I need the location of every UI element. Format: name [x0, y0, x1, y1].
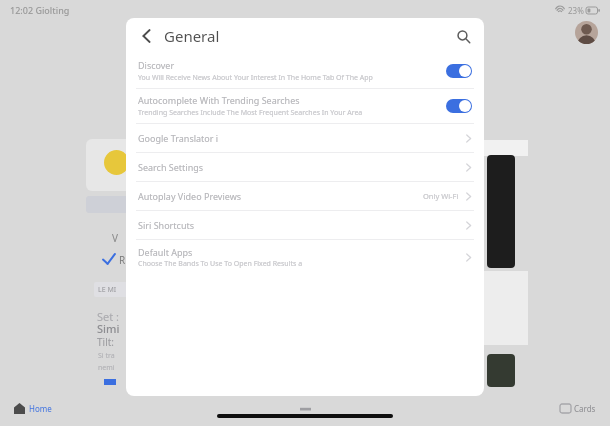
staticText: Home [29, 403, 52, 414]
staticText: Discover [138, 59, 175, 71]
staticText: 23% [568, 5, 584, 16]
button[interactable]: Search Settings [126, 153, 484, 181]
staticText: R [119, 253, 126, 267]
staticText: Trending Searches Include The Most Frequ… [138, 108, 363, 118]
staticText: Search Settings [138, 161, 204, 173]
button[interactable]: Search [450, 23, 476, 49]
button[interactable]: Cards [407, 396, 610, 420]
staticText: Default Apps [138, 246, 193, 258]
staticText: Choose The Bands To Use To Open Fixed Re… [138, 259, 303, 269]
button[interactable]: Siri Shortcuts [126, 211, 484, 239]
staticText: Cards [574, 403, 596, 414]
staticText: LE MI [98, 285, 117, 295]
staticText: Siri Shortcuts [138, 219, 194, 231]
button[interactable]: Home [0, 396, 204, 420]
button[interactable]: Autoplay Video Previews [126, 182, 484, 210]
button[interactable]: Account [575, 21, 598, 44]
button[interactable]: Discover [126, 54, 484, 88]
button[interactable]: Autocomplete With Trending Searches [126, 89, 484, 123]
staticText: Si tra [98, 351, 115, 361]
staticText: Only Wi-Fi [423, 191, 459, 201]
staticText: Autocomplete With Trending Searches [138, 94, 300, 106]
staticText: 12:02 Giolting [10, 4, 70, 16]
staticText: V [112, 231, 118, 245]
staticText: Set : [97, 309, 120, 324]
staticText: Google Translator i [138, 132, 219, 144]
staticText: Simi [97, 321, 120, 336]
button[interactable]: Autocomplete With Trending Searches swit… [446, 99, 472, 113]
button[interactable]: Google Translator i [126, 124, 484, 152]
staticText: Tilt: [97, 335, 115, 349]
button[interactable]: Discover switch, on [446, 64, 472, 78]
staticText: nemi [98, 363, 115, 373]
button[interactable]: Explore [204, 396, 407, 420]
staticText: General [164, 26, 220, 46]
staticText: You Will Receive News About Your Interes… [138, 73, 373, 83]
staticText: Autoplay Video Previews [138, 190, 242, 202]
button[interactable]: Back [134, 23, 160, 49]
button[interactable]: Default Apps [126, 240, 484, 274]
